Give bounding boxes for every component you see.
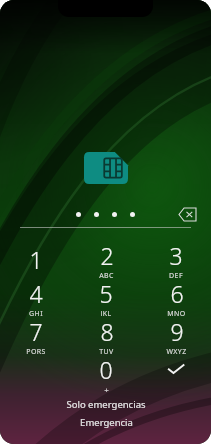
staticText: 2 [100,240,114,271]
staticText: 7 [29,316,43,347]
button[interactable]: 7 [0,316,71,354]
button[interactable]: 1 [0,240,71,278]
staticText: 8 [100,316,114,347]
button[interactable]: 5 [71,278,141,316]
staticText: 5 [99,278,113,309]
button[interactable]: 9 [141,316,211,354]
staticText: 6 [170,278,184,309]
staticText: MNO [167,309,186,316]
button[interactable]: 3 [141,240,211,278]
staticText: 9 [170,316,184,347]
staticText: Emergencia [80,416,133,429]
button[interactable]: Solo emergencias [0,398,211,429]
button[interactable]: Confirm [141,354,211,392]
staticText: + [104,385,109,392]
staticText: DEF [169,271,183,278]
staticText: Solo emergencias [66,398,146,411]
staticText: JKL [100,309,112,316]
button[interactable]: 6 [141,278,211,316]
staticText: 0 [99,354,113,385]
staticText: PQRS [26,347,46,354]
staticText: 4 [29,278,43,309]
staticText: GHI [29,309,43,316]
staticText: ABC [99,271,114,278]
button[interactable]: 2 [71,240,141,278]
staticText: WXYZ [166,347,187,354]
button[interactable]: 0 [71,354,141,392]
button[interactable]: 8 [71,316,141,354]
staticText: 3 [169,240,183,271]
staticText: TUV [99,347,114,354]
staticText: 1 [29,244,43,275]
button[interactable]: 4 [0,278,71,316]
button[interactable]: Backspace [175,205,199,223]
